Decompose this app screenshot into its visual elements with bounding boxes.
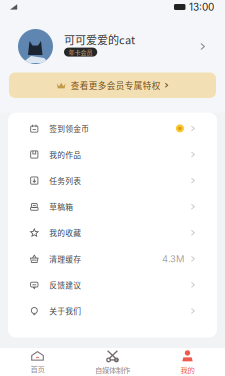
staticText: 查看更多会员专属特权: [71, 79, 161, 91]
staticText: 可可爱爱的cat: [64, 31, 135, 47]
button[interactable]: 自媒体制作: [75, 350, 150, 375]
button[interactable]: 我的: [150, 350, 225, 375]
button[interactable]: 草稿箱: [8, 194, 217, 220]
button[interactable]: 清理缓存: [8, 246, 217, 272]
staticText: 草稿箱: [49, 201, 73, 212]
button[interactable]: 签到领金币: [8, 115, 217, 141]
button[interactable]: 我的作品: [8, 141, 217, 168]
staticText: 清理缓存: [49, 253, 81, 264]
button[interactable]: 任务列表: [8, 167, 217, 194]
staticText: 关于我们: [49, 305, 81, 316]
button[interactable]: 反馈建议: [8, 272, 217, 298]
button[interactable]: 首页: [0, 351, 75, 374]
button[interactable]: 查看更多会员专属特权: [9, 72, 216, 98]
button[interactable]: 关于我们: [8, 298, 217, 324]
button[interactable]: 可可爱爱的cat: [0, 29, 225, 64]
staticText: 反馈建议: [49, 279, 81, 290]
staticText: 首页: [30, 363, 44, 374]
staticText: 签到领金币: [49, 123, 89, 134]
staticText: 年卡会员: [69, 48, 93, 57]
staticText: 我的收藏: [49, 227, 81, 238]
staticText: 任务列表: [49, 175, 81, 186]
staticText: 4.3M: [162, 253, 184, 264]
staticText: 我的作品: [49, 149, 81, 160]
staticText: 自媒体制作: [95, 364, 130, 375]
button[interactable]: 我的收藏: [8, 220, 217, 246]
staticText: 13:00: [189, 1, 214, 13]
staticText: 我的: [180, 364, 194, 375]
